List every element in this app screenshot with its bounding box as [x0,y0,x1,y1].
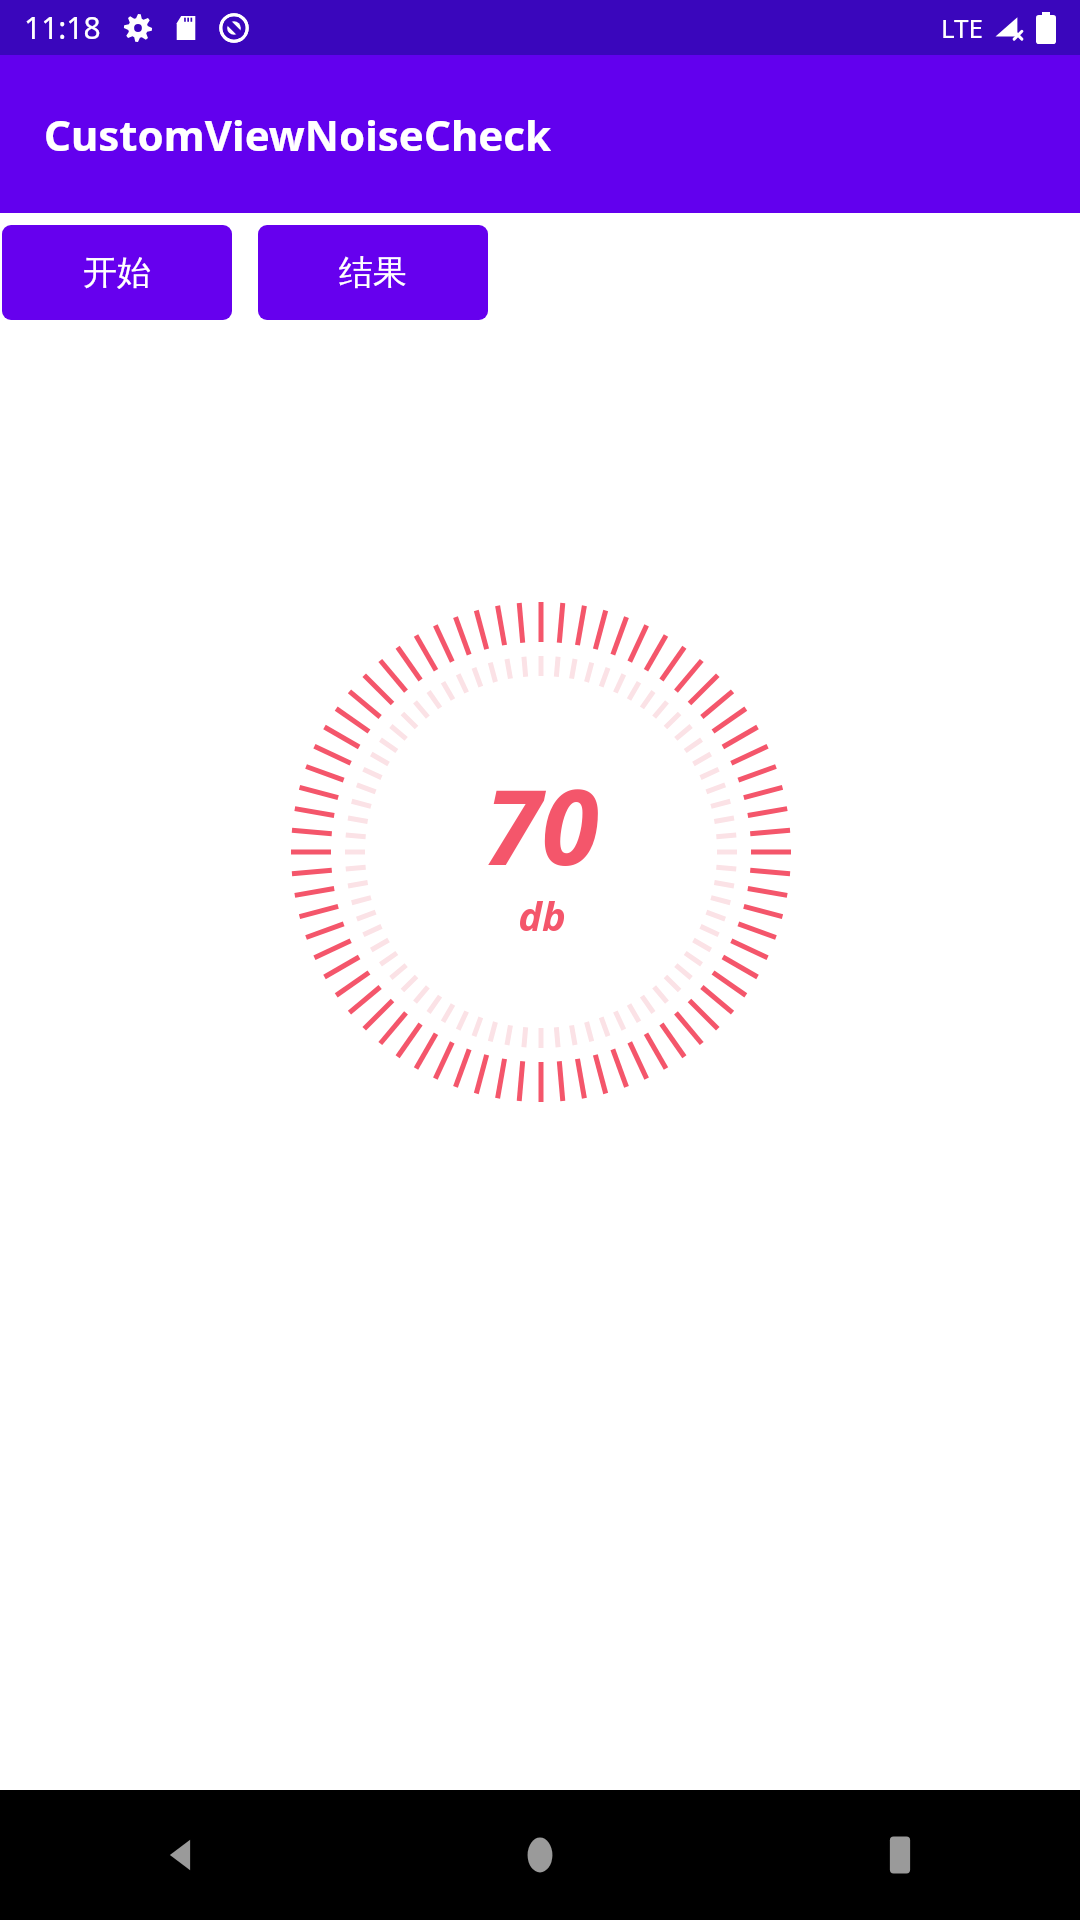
button[interactable]: 开始 [2,225,232,320]
staticText: 11:18 [24,7,101,48]
button[interactable]: 结果 [258,225,488,320]
button[interactable]: Back [0,1790,360,1920]
button[interactable]: Recent apps [720,1790,1080,1920]
staticText: 70 [484,754,599,896]
staticText: db [518,888,566,942]
staticText: LTE [941,10,984,45]
staticText: 开始 [83,251,151,294]
staticText: CustomViewNoiseCheck [44,106,551,163]
button[interactable]: Home [360,1790,720,1920]
staticText: 结果 [339,251,407,294]
